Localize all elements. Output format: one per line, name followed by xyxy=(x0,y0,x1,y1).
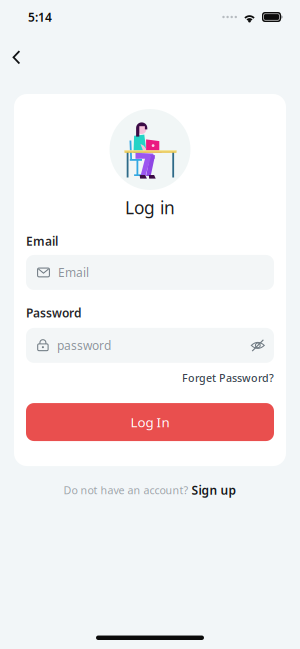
staticText: Log in xyxy=(125,196,175,219)
staticText: Email xyxy=(58,264,89,280)
button[interactable]: Do not have an account? xyxy=(63,482,236,498)
staticText: Do not have an account? xyxy=(63,483,188,497)
button[interactable]: Back xyxy=(0,34,33,73)
staticText: Sign up xyxy=(191,482,236,498)
button[interactable]: Forget Password? xyxy=(182,371,274,385)
button[interactable]: Show password xyxy=(251,338,265,353)
button[interactable]: Log In xyxy=(26,403,274,441)
staticText: 5:14 xyxy=(28,9,52,25)
staticText: Forget Password? xyxy=(182,371,274,385)
staticText: Email xyxy=(26,233,58,249)
staticText: Log In xyxy=(130,413,169,431)
staticText: password xyxy=(57,337,111,353)
staticText: Password xyxy=(26,305,82,321)
